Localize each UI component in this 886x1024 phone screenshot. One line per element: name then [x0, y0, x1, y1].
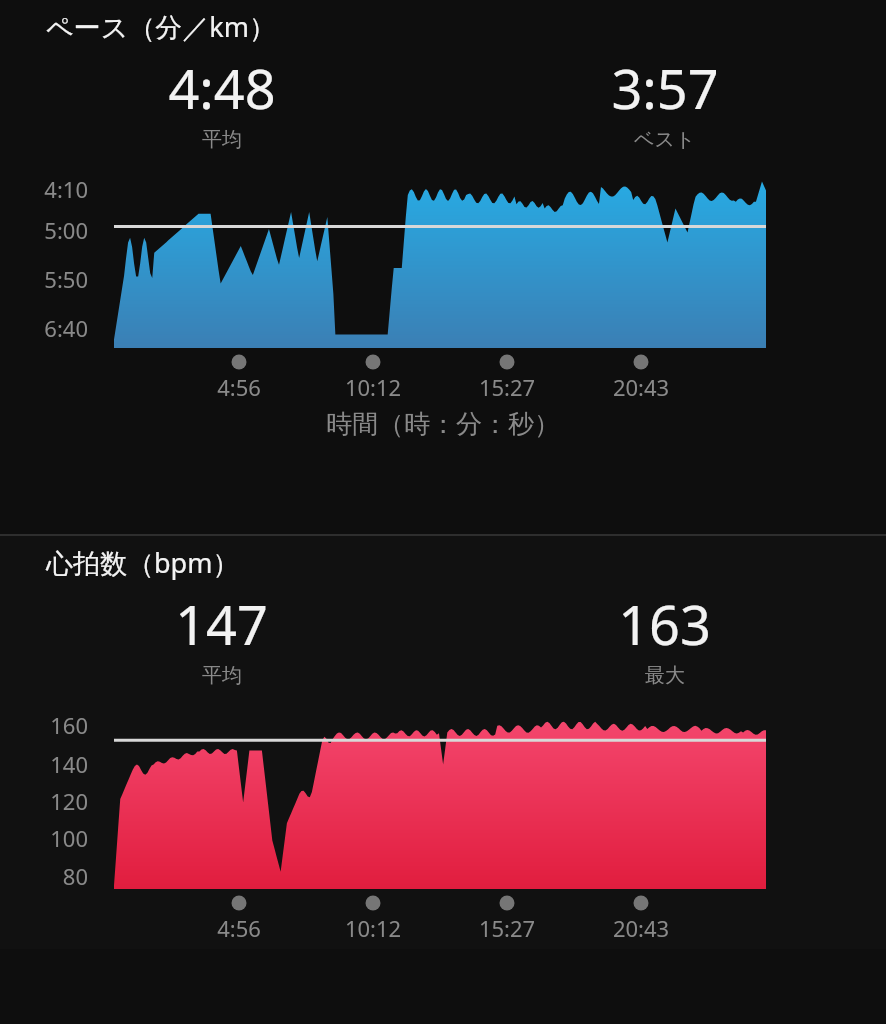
- button[interactable]: Chart: [0, 708, 886, 893]
- button[interactable]: Chart: [0, 170, 886, 352]
- staticText: 4:10: [0, 174, 88, 204]
- staticText: 80: [0, 861, 88, 891]
- staticText: 心拍数（bpm）: [46, 544, 240, 581]
- staticText: 15:27: [457, 372, 557, 402]
- staticText: 140: [0, 749, 88, 779]
- staticText: ベスト: [634, 127, 696, 152]
- staticText: 4:56: [189, 913, 289, 943]
- staticText: 20:43: [591, 372, 691, 402]
- staticText: 160: [0, 710, 88, 740]
- staticText: 6:40: [0, 313, 88, 343]
- button[interactable]: 147: [0, 587, 443, 688]
- staticText: 時間（時：分：秒）: [0, 408, 886, 441]
- staticText: 15:27: [457, 913, 557, 943]
- staticText: 4:56: [189, 372, 289, 402]
- staticText: 10:12: [323, 372, 423, 402]
- staticText: 平均: [202, 127, 242, 152]
- staticText: ペース（分／km）: [46, 8, 276, 45]
- staticText: 4:48: [168, 51, 276, 125]
- staticText: 120: [0, 786, 88, 816]
- button[interactable]: 4:48: [0, 51, 443, 152]
- staticText: 平均: [202, 663, 242, 688]
- button[interactable]: 163: [443, 587, 886, 688]
- staticText: 100: [0, 823, 88, 853]
- staticText: 5:50: [0, 264, 88, 294]
- staticText: 最大: [645, 663, 685, 688]
- staticText: 5:00: [0, 215, 88, 245]
- staticText: 163: [618, 587, 711, 661]
- staticText: 3:57: [611, 51, 719, 125]
- staticText: 20:43: [591, 913, 691, 943]
- staticText: 147: [175, 587, 268, 661]
- button[interactable]: 3:57: [443, 51, 886, 152]
- staticText: 10:12: [323, 913, 423, 943]
